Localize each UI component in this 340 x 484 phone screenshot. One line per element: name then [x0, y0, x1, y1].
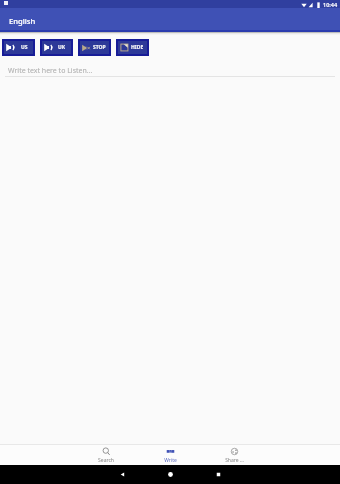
button[interactable]: Write	[138, 445, 202, 465]
button[interactable]: Search	[74, 445, 138, 465]
staticText: STOP	[93, 44, 106, 51]
button[interactable]: Share ...	[202, 445, 266, 465]
button[interactable]: STOP	[78, 39, 111, 56]
staticText: Search	[98, 457, 114, 464]
button[interactable]: Recents	[194, 465, 242, 484]
staticText: Write	[164, 457, 177, 464]
staticText: English	[9, 16, 36, 26]
button[interactable]: Back	[98, 465, 146, 484]
staticText: Share ...	[225, 457, 244, 464]
staticText: US	[21, 44, 28, 51]
staticText: HIDE	[131, 44, 144, 51]
button[interactable]: UK	[40, 39, 73, 56]
button[interactable]: US	[2, 39, 35, 56]
staticText: UK	[58, 44, 66, 51]
staticText: Write text here to Listen...	[8, 66, 93, 76]
staticText: 10:44	[323, 1, 338, 8]
button[interactable]: Home	[146, 465, 194, 484]
button[interactable]: HIDE	[116, 39, 149, 56]
button[interactable]: Write text here to Listen...	[5, 66, 335, 77]
